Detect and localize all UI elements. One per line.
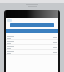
button[interactable] [6, 45, 58, 50]
button[interactable] [6, 35, 58, 40]
button[interactable]: Header image [6, 10, 58, 18]
button[interactable] [6, 50, 58, 55]
button[interactable] [6, 40, 58, 45]
button[interactable] [7, 19, 12, 22]
